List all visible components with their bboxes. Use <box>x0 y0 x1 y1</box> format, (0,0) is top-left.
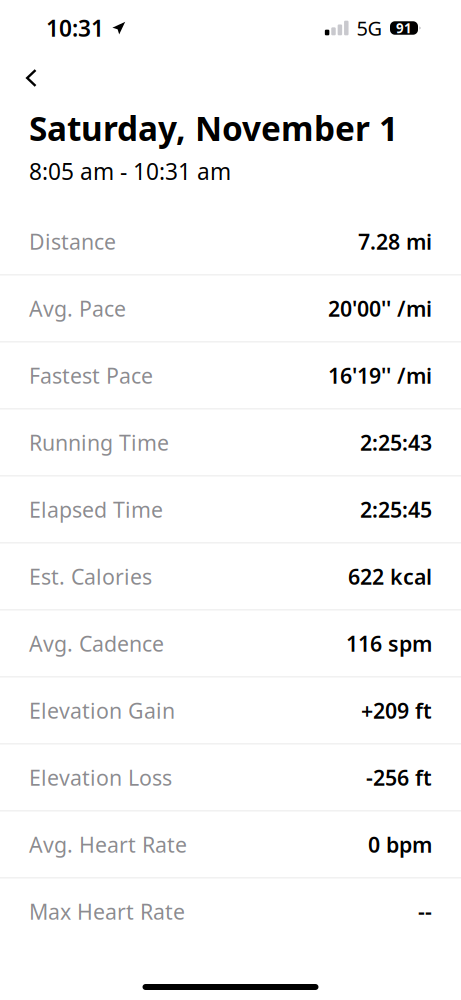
staticText: Est. Calories <box>29 562 152 590</box>
staticText: 8:05 am - 10:31 am <box>29 156 231 186</box>
staticText: 20'00'' /mi <box>328 294 432 322</box>
staticText: Avg. Pace <box>29 294 126 322</box>
button[interactable]: Max Heart Rate <box>0 878 461 945</box>
staticText: Avg. Cadence <box>29 629 164 657</box>
button[interactable]: Est. Calories <box>0 543 461 610</box>
button[interactable]: Elapsed Time <box>0 476 461 543</box>
button[interactable]: Avg. Heart Rate <box>0 811 461 878</box>
staticText: 7.28 mi <box>358 227 432 255</box>
staticText: Elapsed Time <box>29 495 163 523</box>
staticText: +209 ft <box>361 696 432 724</box>
staticText: 16'19'' /mi <box>328 361 432 389</box>
button[interactable]: Back <box>0 60 55 96</box>
button[interactable]: Avg. Pace <box>0 275 461 342</box>
button[interactable]: Elevation Gain <box>0 677 461 744</box>
staticText: Max Heart Rate <box>29 897 185 925</box>
button[interactable]: Fastest Pace <box>0 342 461 409</box>
staticText: 91 <box>396 19 412 37</box>
staticText: 10:31 <box>46 13 104 43</box>
staticText: 0 bpm <box>368 830 432 858</box>
staticText: Distance <box>29 227 116 255</box>
staticText: 2:25:45 <box>360 495 432 523</box>
staticText: Saturday, November 1 <box>29 106 398 150</box>
staticText: Fastest Pace <box>29 361 153 389</box>
staticText: -- <box>418 897 432 925</box>
staticText: Avg. Heart Rate <box>29 830 187 858</box>
staticText: Elevation Gain <box>29 696 175 724</box>
staticText: 2:25:43 <box>360 428 432 456</box>
button[interactable]: Elevation Loss <box>0 744 461 811</box>
staticText: -256 ft <box>366 763 432 791</box>
staticText: Running Time <box>29 428 169 456</box>
button[interactable]: Avg. Cadence <box>0 610 461 677</box>
staticText: 622 kcal <box>348 562 432 590</box>
button[interactable]: Distance <box>0 208 461 275</box>
staticText: 116 spm <box>346 629 432 657</box>
staticText: 5G <box>356 15 382 41</box>
staticText: Elevation Loss <box>29 763 172 791</box>
button[interactable]: Running Time <box>0 409 461 476</box>
